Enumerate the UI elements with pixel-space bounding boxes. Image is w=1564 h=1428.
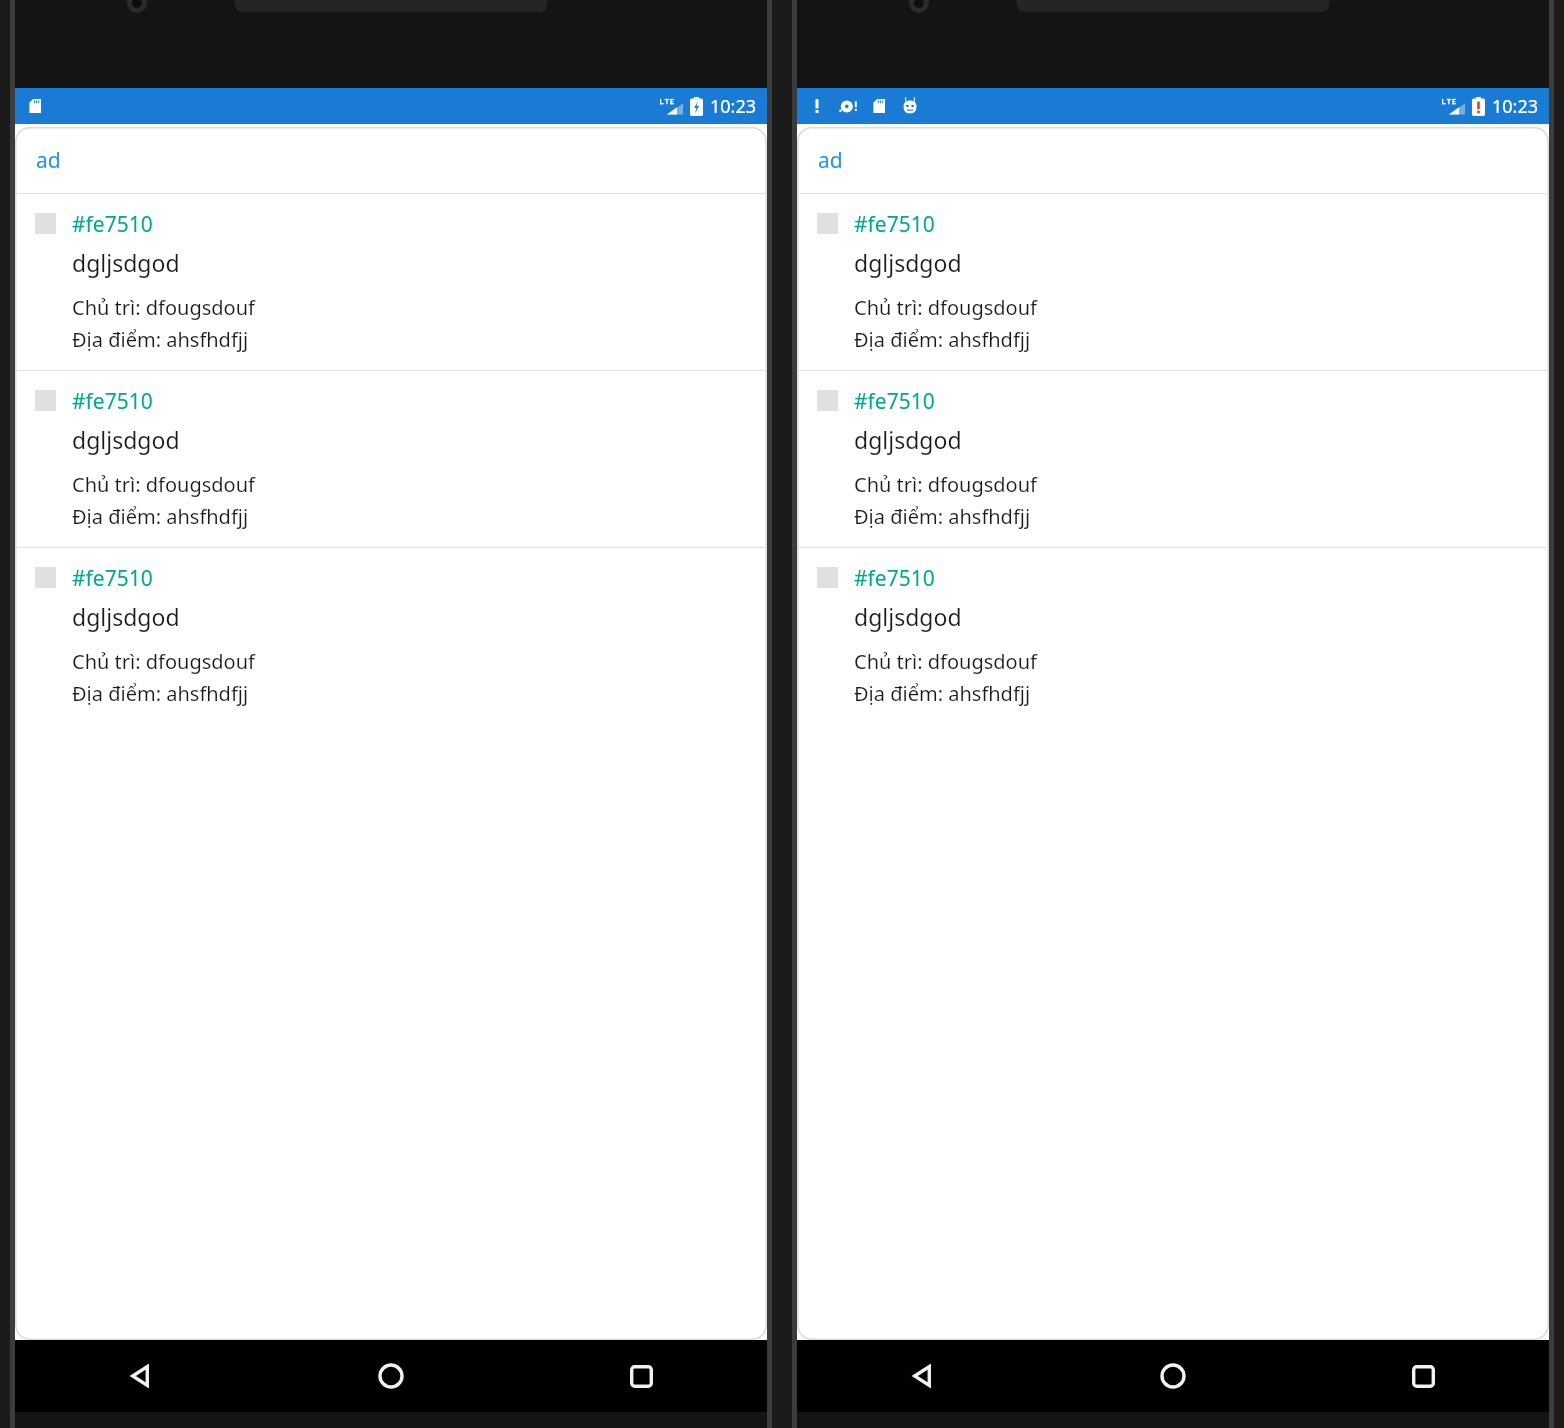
button[interactable]: #fe7510: [15, 194, 767, 370]
staticText: Chủ trì: dfougsdouf: [72, 294, 255, 321]
button[interactable]: Home: [265, 1340, 516, 1412]
button[interactable]: Recents: [1298, 1340, 1549, 1412]
staticText: Chủ trì: dfougsdouf: [854, 294, 1037, 321]
staticText: #fe7510: [854, 387, 935, 416]
staticText: Chủ trì: dfougsdouf: [854, 648, 1037, 675]
staticText: dgljsdgod: [72, 247, 180, 278]
staticText: dgljsdgod: [854, 424, 962, 455]
staticText: Chủ trì: dfougsdouf: [72, 471, 255, 498]
staticText: #fe7510: [72, 564, 153, 593]
button[interactable]: #fe7510: [797, 548, 1549, 724]
staticText: #fe7510: [72, 387, 153, 416]
button[interactable]: #fe7510: [797, 194, 1549, 370]
staticText: Chủ trì: dfougsdouf: [854, 471, 1037, 498]
button[interactable]: Recents: [516, 1340, 767, 1412]
staticText: Địa điểm: ahsfhdfjj: [72, 680, 249, 707]
staticText: #fe7510: [854, 564, 935, 593]
button[interactable]: #fe7510: [15, 548, 767, 724]
staticText: Địa điểm: ahsfhdfjj: [854, 680, 1031, 707]
button[interactable]: Home: [1047, 1340, 1298, 1412]
staticText: ad: [36, 146, 61, 175]
button[interactable]: #fe7510: [797, 371, 1549, 547]
staticText: dgljsdgod: [854, 601, 962, 632]
button[interactable]: Back: [797, 1340, 1047, 1412]
staticText: Địa điểm: ahsfhdfjj: [854, 326, 1031, 353]
button[interactable]: ad: [15, 127, 767, 193]
staticText: dgljsdgod: [854, 247, 962, 278]
staticText: dgljsdgod: [72, 601, 180, 632]
staticText: #fe7510: [72, 210, 153, 239]
staticText: Địa điểm: ahsfhdfjj: [72, 326, 249, 353]
staticText: dgljsdgod: [72, 424, 180, 455]
staticText: Địa điểm: ahsfhdfjj: [854, 503, 1031, 530]
staticText: Chủ trì: dfougsdouf: [72, 648, 255, 675]
button[interactable]: Back: [15, 1340, 265, 1412]
staticText: 10:23: [1492, 94, 1539, 119]
staticText: #fe7510: [854, 210, 935, 239]
staticText: ad: [818, 146, 843, 175]
staticText: 10:23: [710, 94, 757, 119]
button[interactable]: #fe7510: [15, 371, 767, 547]
staticText: Địa điểm: ahsfhdfjj: [72, 503, 249, 530]
button[interactable]: ad: [797, 127, 1549, 193]
